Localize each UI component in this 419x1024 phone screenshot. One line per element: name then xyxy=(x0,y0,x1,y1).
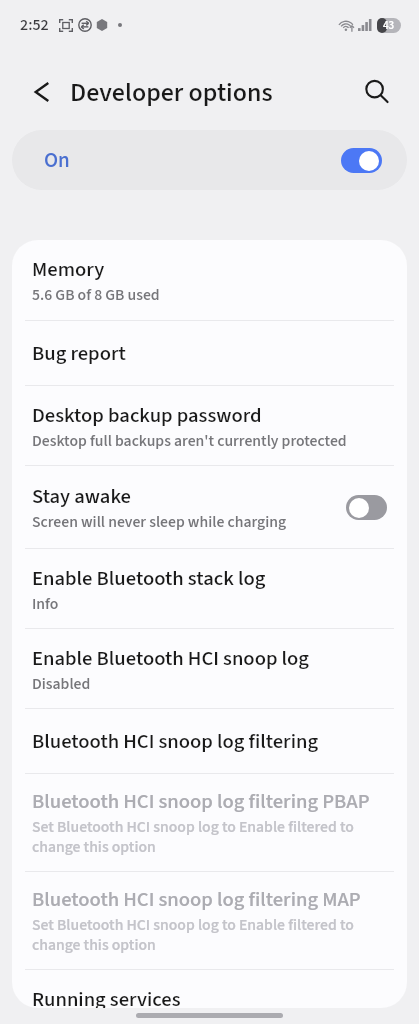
button[interactable]: On xyxy=(12,130,407,190)
button[interactable]: Search xyxy=(357,72,397,112)
staticText: Running services xyxy=(32,985,181,1008)
staticText: Set Bluetooth HCI snoop log to Enable fi… xyxy=(32,816,387,859)
staticText: Bluetooth HCI snoop log filtering MAP xyxy=(32,885,361,914)
button[interactable]: Enable Bluetooth stack log xyxy=(12,549,407,629)
staticText: Developer options xyxy=(70,74,273,111)
staticText: Bug report xyxy=(32,339,126,368)
button[interactable]: Desktop backup password xyxy=(12,386,407,466)
staticText: Screen will never sleep while charging xyxy=(32,511,287,533)
staticText: Stay awake xyxy=(32,482,131,511)
button[interactable]: Running services xyxy=(12,970,407,1008)
staticText: Enable Bluetooth stack log xyxy=(32,564,266,593)
staticText: Set Bluetooth HCI snoop log to Enable fi… xyxy=(32,914,387,957)
button[interactable]: Bluetooth HCI snoop log filtering PBAP xyxy=(12,774,407,872)
button[interactable]: Stay awake xyxy=(12,466,407,549)
staticText: 2:52 xyxy=(20,14,49,37)
button[interactable]: Bug report xyxy=(12,321,407,386)
staticText: 43 xyxy=(383,18,395,33)
staticText: Memory xyxy=(32,255,105,284)
button[interactable]: Enable Bluetooth HCI snoop log xyxy=(12,629,407,709)
staticText: Bluetooth HCI snoop log filtering PBAP xyxy=(32,787,370,816)
button[interactable]: Memory xyxy=(12,240,407,321)
staticText: Desktop backup password xyxy=(32,401,262,430)
staticText: On xyxy=(44,145,70,175)
staticText: Enable Bluetooth HCI snoop log xyxy=(32,644,309,673)
button[interactable]: Navigate up xyxy=(22,72,62,112)
button[interactable]: Bluetooth HCI snoop log filtering MAP xyxy=(12,872,407,970)
button[interactable]: Bluetooth HCI snoop log filtering xyxy=(12,709,407,774)
staticText: Desktop full backups aren't currently pr… xyxy=(32,430,347,452)
staticText: Disabled xyxy=(32,673,91,695)
staticText: 5.6 GB of 8 GB used xyxy=(32,284,160,306)
staticText: Info xyxy=(32,593,59,615)
staticText: Bluetooth HCI snoop log filtering xyxy=(32,727,319,756)
